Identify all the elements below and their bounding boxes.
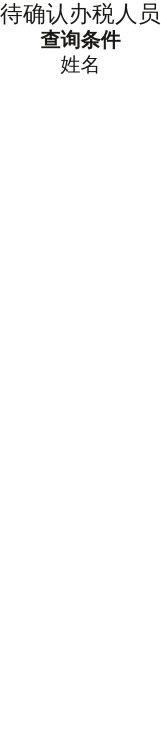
staticText: 待确认办税人员 [0, 0, 161, 28]
staticText: 姓名 [60, 52, 100, 77]
staticText: 查询条件 [40, 28, 120, 52]
